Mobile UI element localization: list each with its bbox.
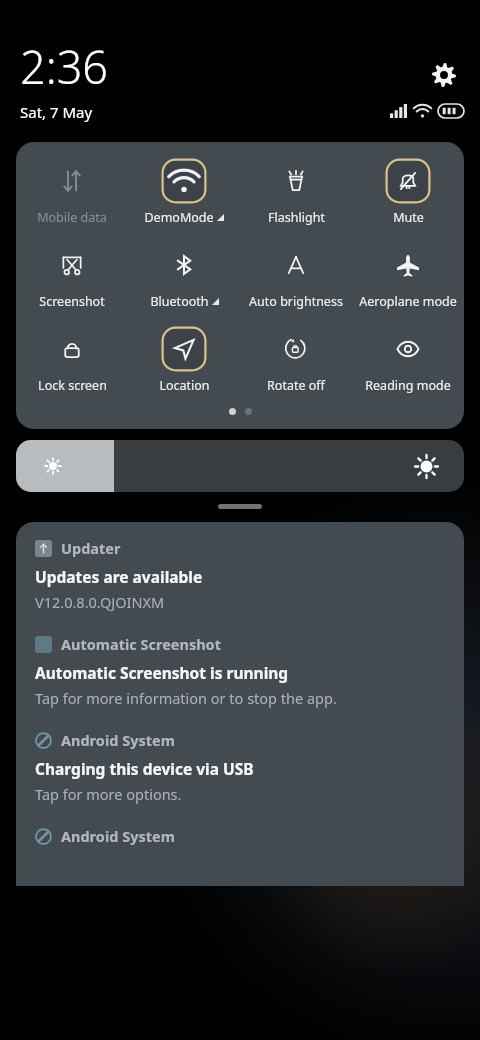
staticText: Automatic Screenshot is running <box>35 662 289 683</box>
staticText: Android System <box>61 826 175 846</box>
button[interactable]: Mobile data <box>16 156 128 228</box>
button[interactable]: Location <box>128 324 240 396</box>
staticText: Charging this device via USB <box>35 758 254 779</box>
staticText: Tap for more options. <box>35 784 182 804</box>
staticText: Android System <box>61 730 175 750</box>
staticText: Aeroplane mode <box>359 293 457 310</box>
staticText: Reading mode <box>365 377 451 394</box>
staticText: V12.0.8.0.QJOINXM <box>35 592 165 612</box>
staticText: Location <box>159 377 210 394</box>
staticText: Lock screen <box>38 377 107 394</box>
button[interactable]: Screenshot <box>16 240 128 312</box>
staticText: Bluetooth <box>150 293 209 310</box>
button[interactable]: Automatic Screenshot <box>16 634 464 708</box>
button[interactable]: Aeroplane mode <box>352 240 464 312</box>
staticText: Automatic Screenshot <box>61 634 221 654</box>
staticText: Flashlight <box>268 209 325 226</box>
staticText: Updater <box>61 538 121 558</box>
staticText: Rotate off <box>267 377 325 394</box>
button[interactable]: Rotate off <box>240 324 352 396</box>
button[interactable]: Updater <box>16 538 464 612</box>
staticText: Auto brightness <box>249 293 343 310</box>
staticText: Screenshot <box>39 293 105 310</box>
staticText: DemoMode <box>144 209 214 226</box>
button[interactable]: Android System <box>16 730 464 804</box>
button[interactable]: Android System <box>16 826 464 846</box>
staticText: Tap for more information or to stop the … <box>35 688 337 708</box>
button[interactable]: Bluetooth <box>128 240 240 312</box>
staticText: 2:36 <box>20 36 109 97</box>
button[interactable]: Brightness <box>16 440 464 492</box>
button[interactable]: Reading mode <box>352 324 464 396</box>
button[interactable]: Lock screen <box>16 324 128 396</box>
button[interactable]: Flashlight <box>240 156 352 228</box>
button[interactable]: Auto brightness <box>240 240 352 312</box>
staticText: Mute <box>393 209 424 226</box>
button[interactable]: Mute <box>352 156 464 228</box>
staticText: Updates are available <box>35 566 203 587</box>
button[interactable]: DemoMode <box>128 156 240 228</box>
staticText: Sat, 7 May <box>20 102 93 122</box>
button[interactable]: Settings <box>426 57 462 93</box>
staticText: Mobile data <box>37 209 107 226</box>
